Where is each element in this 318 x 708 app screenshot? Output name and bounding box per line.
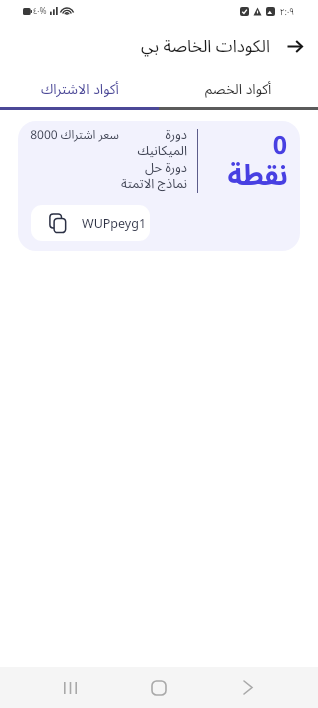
staticText: دورة حل نماذج الاتمتة <box>119 158 187 191</box>
button[interactable]: Home <box>114 667 204 708</box>
staticText: دورة الميكانيك <box>119 125 187 158</box>
staticText: الكودات الخاصة بي <box>141 34 270 57</box>
button[interactable]: أكواد الاشتراك <box>0 69 159 107</box>
staticText: نقطة <box>227 155 288 193</box>
staticText: سعر اشتراك 8000 <box>30 126 119 142</box>
button[interactable]: Recents <box>26 667 114 708</box>
button[interactable]: أكواد الخصم <box>159 69 318 107</box>
staticText: أكواد الخصم <box>205 79 272 98</box>
staticText: ٢:٠٩ <box>280 5 294 17</box>
staticText: أكواد الاشتراك <box>41 79 119 98</box>
staticText: WUPpeyg1 <box>82 215 147 232</box>
button[interactable]: Back <box>282 33 308 59</box>
staticText: ٤٠% <box>33 5 47 17</box>
staticText: 0 <box>272 127 287 161</box>
button[interactable]: سعر اشتراك 8000 <box>18 121 300 251</box>
button[interactable]: Back <box>204 667 292 708</box>
button[interactable]: WUPpeyg1 <box>31 205 150 241</box>
